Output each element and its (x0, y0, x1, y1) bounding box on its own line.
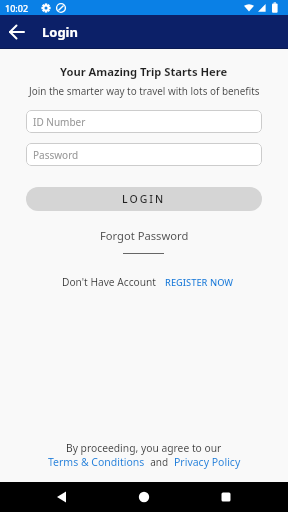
staticText: Your Amazing Trip Starts Here (60, 64, 228, 79)
staticText: 10:02 (5, 2, 29, 14)
staticText: Login (42, 23, 78, 41)
staticText: By proceeding, you agree to our (66, 441, 222, 455)
staticText: and (145, 455, 174, 469)
button[interactable]: LOGIN (26, 187, 262, 211)
staticText: ID Number (33, 115, 86, 129)
staticText: Password (33, 148, 79, 162)
button[interactable]: Terms & Conditions (48, 455, 145, 469)
button[interactable] (54, 489, 70, 505)
button[interactable]: REGISTER NOW (165, 276, 234, 289)
button[interactable]: Password (26, 143, 262, 166)
staticText: Don't Have Account (62, 275, 156, 289)
button[interactable] (0, 15, 34, 49)
button[interactable]: Forgot Password (100, 228, 189, 243)
button[interactable]: ID Number (26, 110, 262, 133)
button[interactable] (218, 489, 234, 505)
staticText: Join the smarter way to travel with lots… (29, 84, 260, 97)
button[interactable]: Privacy Policy (174, 455, 241, 469)
staticText: LOGIN (122, 192, 166, 206)
button[interactable] (136, 489, 152, 505)
